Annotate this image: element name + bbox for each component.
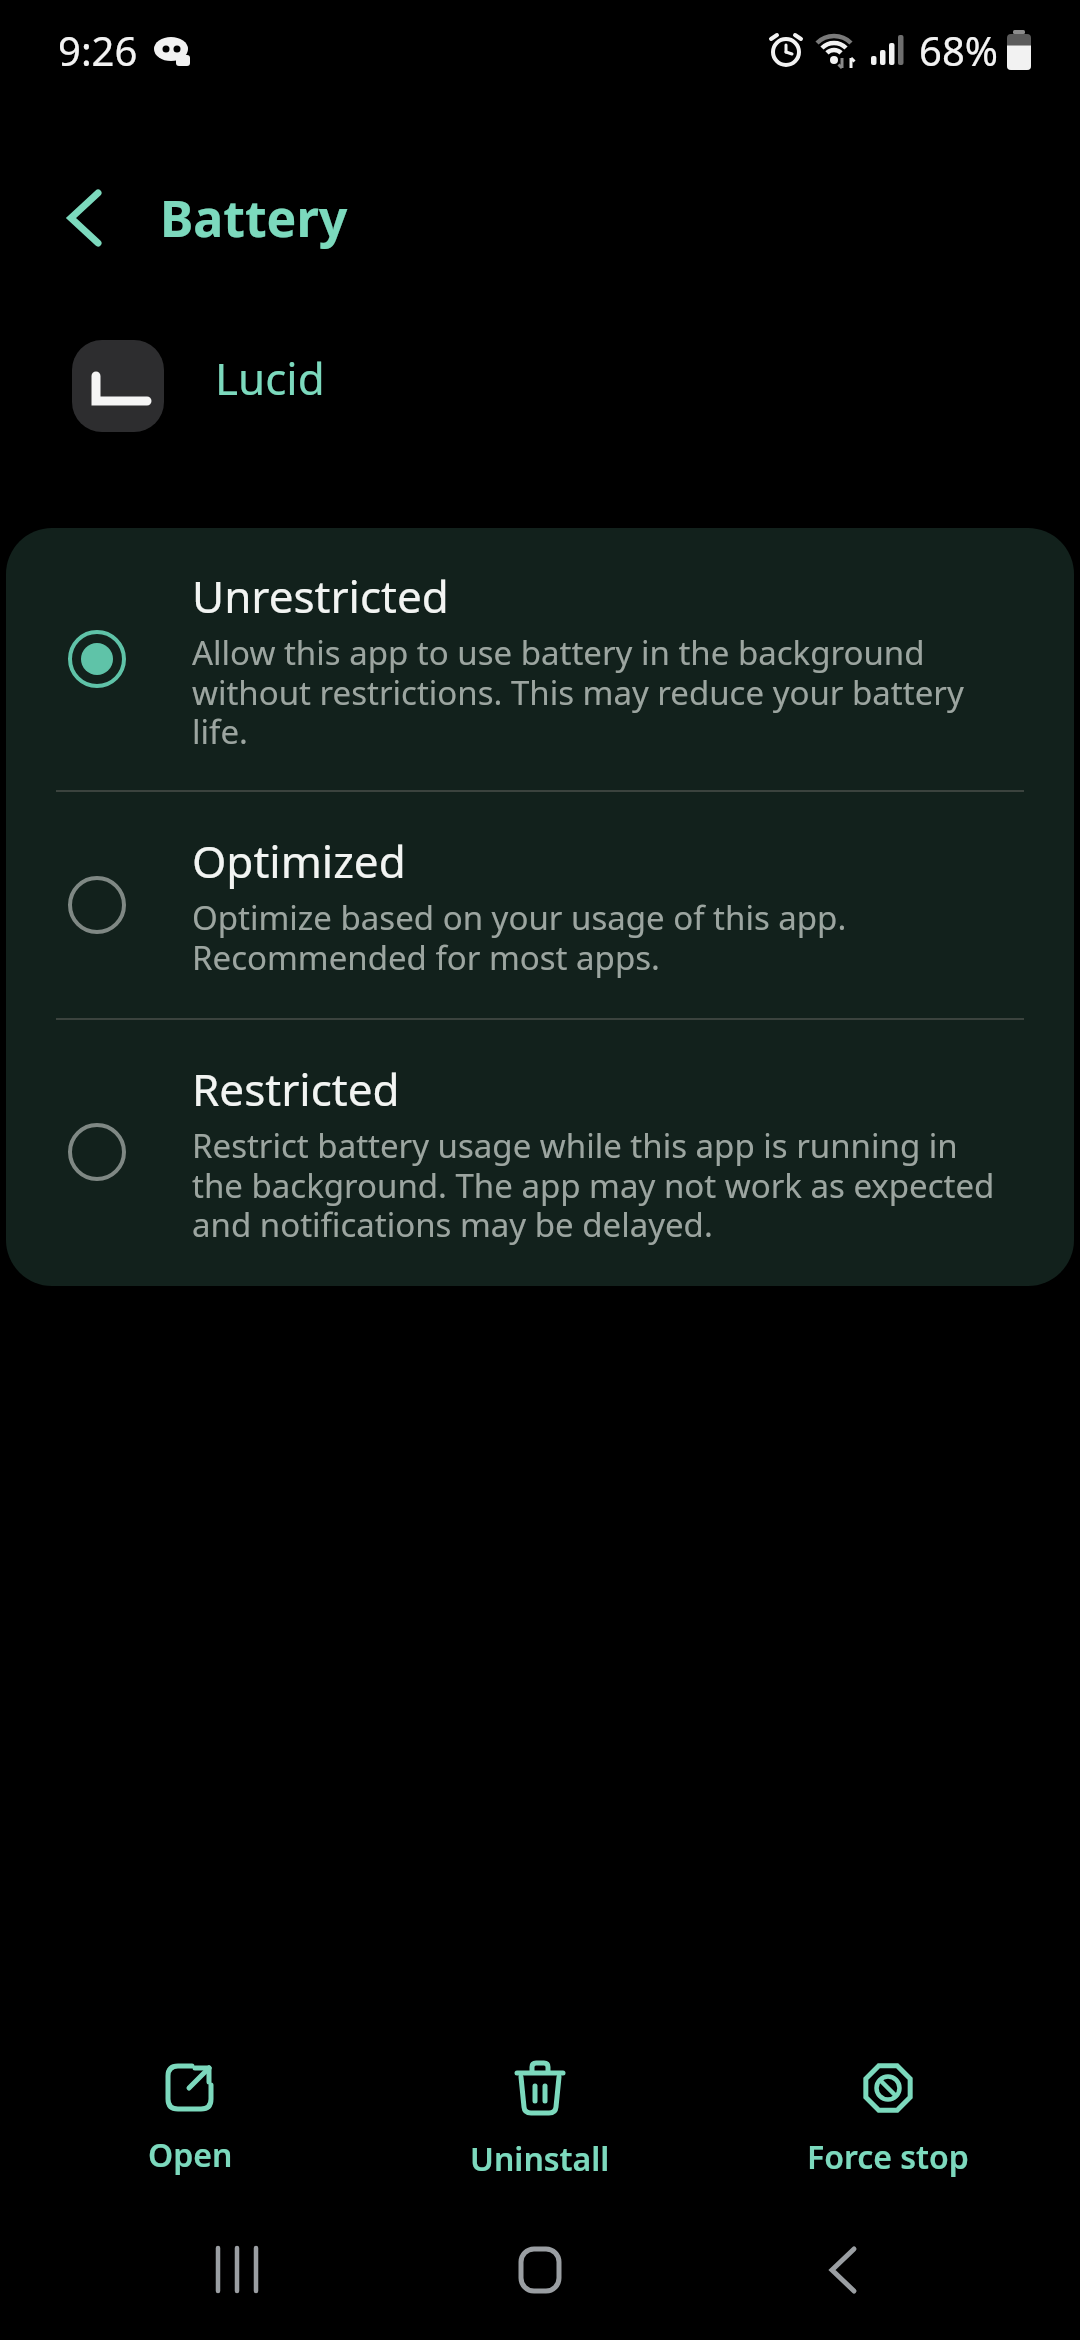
staticText: 9:26 (58, 23, 138, 77)
button[interactable] (804, 2232, 880, 2308)
button[interactable]: Open (10, 2040, 370, 2177)
button[interactable]: Optimized (6, 792, 1074, 1018)
staticText: Optimized (192, 831, 406, 891)
staticText: Unrestricted (192, 566, 449, 626)
staticText: Optimize based on your usage of this app… (192, 895, 847, 979)
button[interactable]: Lucid (0, 340, 1080, 432)
staticText: 68% (919, 23, 998, 77)
button[interactable]: Force stop (708, 2040, 1068, 2179)
button[interactable]: Restricted (6, 1020, 1074, 1284)
button[interactable]: Unrestricted (6, 528, 1074, 790)
button[interactable]: Uninstall (360, 2040, 720, 2181)
button[interactable] (48, 182, 120, 254)
staticText: Uninstall (470, 2137, 610, 2181)
staticText: Open (148, 2133, 233, 2177)
staticText: Lucid (215, 348, 325, 408)
button[interactable] (502, 2232, 578, 2308)
staticText: Battery (160, 184, 348, 252)
staticText: Restricted (192, 1059, 400, 1119)
staticText: Force stop (807, 2135, 969, 2179)
button[interactable] (200, 2232, 276, 2308)
staticText: Restrict battery usage while this app is… (192, 1123, 995, 1246)
staticText: Allow this app to use battery in the bac… (192, 630, 964, 753)
